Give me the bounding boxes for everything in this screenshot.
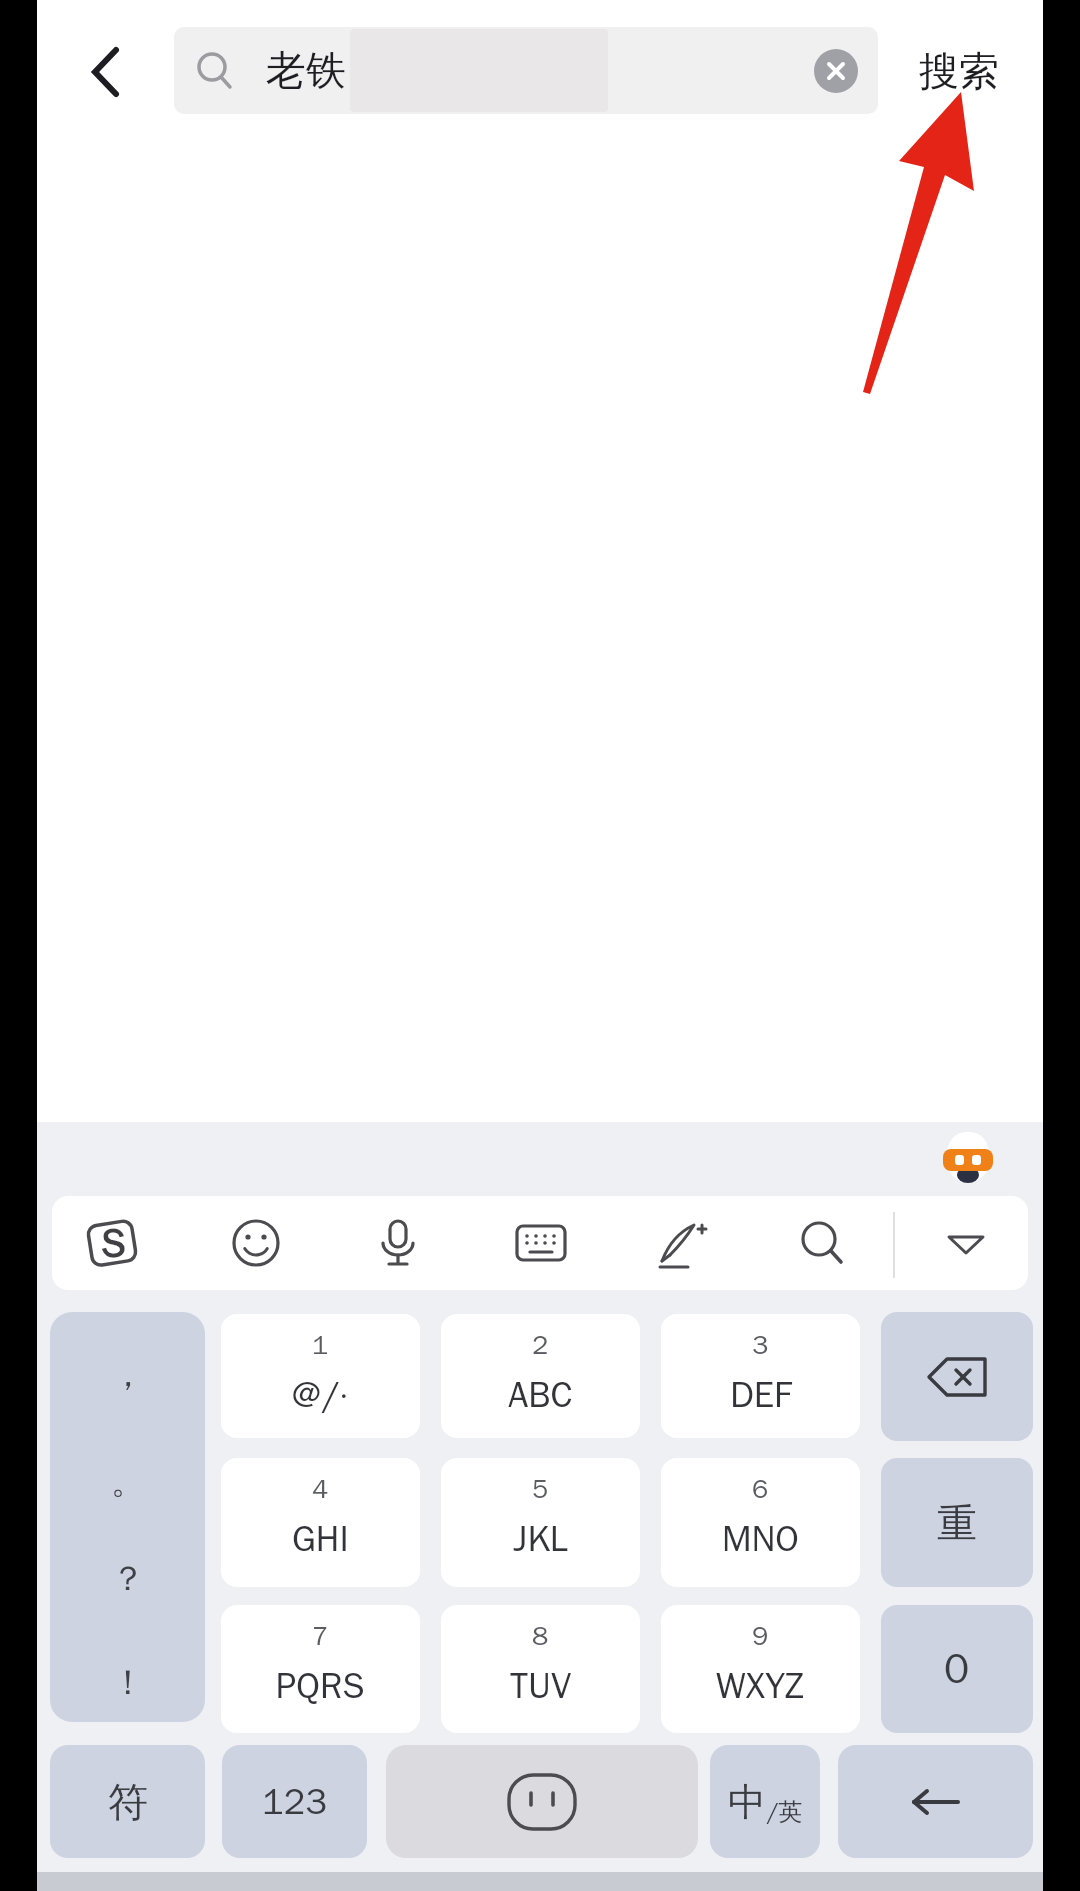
staticText: 老铁 bbox=[266, 45, 346, 95]
button[interactable]: 2 bbox=[441, 1314, 640, 1438]
button[interactable]: 3 bbox=[661, 1314, 860, 1438]
button[interactable]: ， bbox=[50, 1312, 205, 1722]
staticText: 123 bbox=[262, 1779, 327, 1824]
button[interactable]: 重 bbox=[881, 1458, 1033, 1587]
button[interactable] bbox=[343, 1196, 453, 1290]
staticText: 7 bbox=[312, 1619, 329, 1653]
staticText: MNO bbox=[722, 1516, 799, 1561]
button[interactable] bbox=[386, 1745, 698, 1858]
button[interactable] bbox=[486, 1196, 596, 1290]
staticText: ABC bbox=[508, 1372, 573, 1417]
button[interactable] bbox=[767, 1196, 877, 1290]
staticText: 。 bbox=[111, 1460, 145, 1503]
button[interactable]: 7 bbox=[221, 1605, 420, 1733]
staticText: 0 bbox=[944, 1643, 970, 1696]
button[interactable]: 123 bbox=[222, 1745, 367, 1858]
button[interactable]: 搜索 bbox=[896, 38, 1022, 104]
button[interactable]: 8 bbox=[441, 1605, 640, 1733]
staticText: 8 bbox=[532, 1619, 549, 1653]
button[interactable] bbox=[75, 42, 135, 102]
button[interactable] bbox=[838, 1745, 1033, 1858]
staticText: ！ bbox=[111, 1661, 145, 1704]
staticText: GHI bbox=[292, 1516, 349, 1561]
staticText: 5 bbox=[532, 1472, 549, 1506]
button[interactable]: 中 bbox=[710, 1745, 820, 1858]
staticText: 符 bbox=[108, 1777, 148, 1827]
staticText: 1 bbox=[312, 1328, 329, 1362]
button[interactable]: 9 bbox=[661, 1605, 860, 1733]
staticText: 2 bbox=[532, 1328, 549, 1362]
staticText: @/· bbox=[292, 1372, 349, 1417]
staticText: ， bbox=[111, 1353, 145, 1396]
button[interactable] bbox=[58, 1196, 168, 1290]
staticText: DEF bbox=[730, 1372, 792, 1417]
button[interactable]: 6 bbox=[661, 1458, 860, 1587]
staticText: 搜索 bbox=[919, 46, 999, 96]
button[interactable]: 1 bbox=[221, 1314, 420, 1438]
button[interactable] bbox=[911, 1196, 1021, 1290]
staticText: 9 bbox=[752, 1619, 769, 1653]
button[interactable] bbox=[881, 1312, 1033, 1441]
staticText: 中 bbox=[728, 1778, 766, 1826]
button[interactable]: 4 bbox=[221, 1458, 420, 1587]
staticText: 4 bbox=[312, 1472, 329, 1506]
button[interactable] bbox=[627, 1196, 737, 1290]
staticText: ？ bbox=[111, 1557, 145, 1600]
button[interactable] bbox=[814, 49, 858, 93]
button[interactable]: 5 bbox=[441, 1458, 640, 1587]
staticText: 6 bbox=[752, 1472, 769, 1506]
staticText: JKL bbox=[513, 1516, 568, 1561]
staticText: 3 bbox=[752, 1328, 769, 1362]
button[interactable]: 0 bbox=[881, 1605, 1033, 1733]
staticText: WXYZ bbox=[716, 1663, 805, 1708]
staticText: 重 bbox=[937, 1498, 977, 1548]
staticText: /英 bbox=[766, 1797, 803, 1827]
button[interactable] bbox=[201, 1196, 311, 1290]
staticText: PQRS bbox=[276, 1663, 365, 1708]
staticText: TUV bbox=[510, 1663, 572, 1708]
button[interactable]: 符 bbox=[50, 1745, 205, 1858]
staticText: S bbox=[101, 1218, 126, 1268]
